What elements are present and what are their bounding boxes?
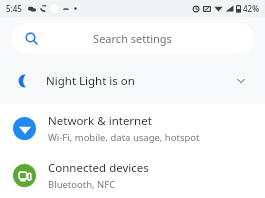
staticText: Bluetooth, NFC bbox=[48, 178, 116, 191]
staticText: 42% bbox=[243, 3, 259, 14]
button[interactable]: Connected devices bbox=[0, 152, 265, 198]
button[interactable]: Network & internet bbox=[0, 104, 265, 152]
button[interactable]: Night Light is on bbox=[0, 60, 265, 102]
button[interactable]: Expand bbox=[231, 71, 251, 91]
staticText: Connected devices bbox=[48, 160, 149, 176]
staticText: Network & internet bbox=[48, 113, 152, 129]
staticText: 5:45 bbox=[6, 3, 22, 14]
staticText: Wi-Fi, mobile, data usage, hotspot bbox=[48, 131, 200, 144]
staticText: Night Light is on bbox=[46, 73, 135, 89]
staticText: Search settings bbox=[38, 31, 227, 46]
button[interactable]: Search settings bbox=[11, 23, 254, 54]
